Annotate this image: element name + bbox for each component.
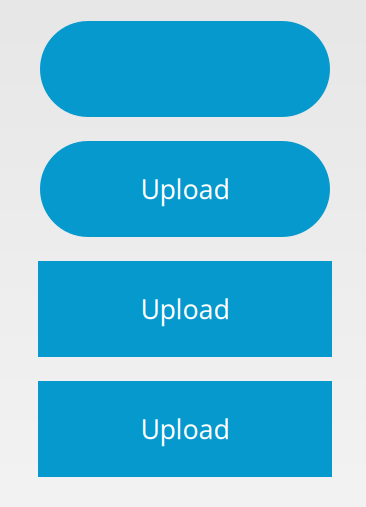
button[interactable]: Upload: [38, 261, 332, 357]
staticText: Upload: [140, 171, 229, 207]
staticText: Upload: [140, 291, 229, 327]
button[interactable]: Upload: [40, 141, 330, 237]
staticText: Upload: [140, 411, 229, 447]
button[interactable]: Upload: [38, 381, 332, 477]
button[interactable]: Upload: [40, 21, 330, 117]
